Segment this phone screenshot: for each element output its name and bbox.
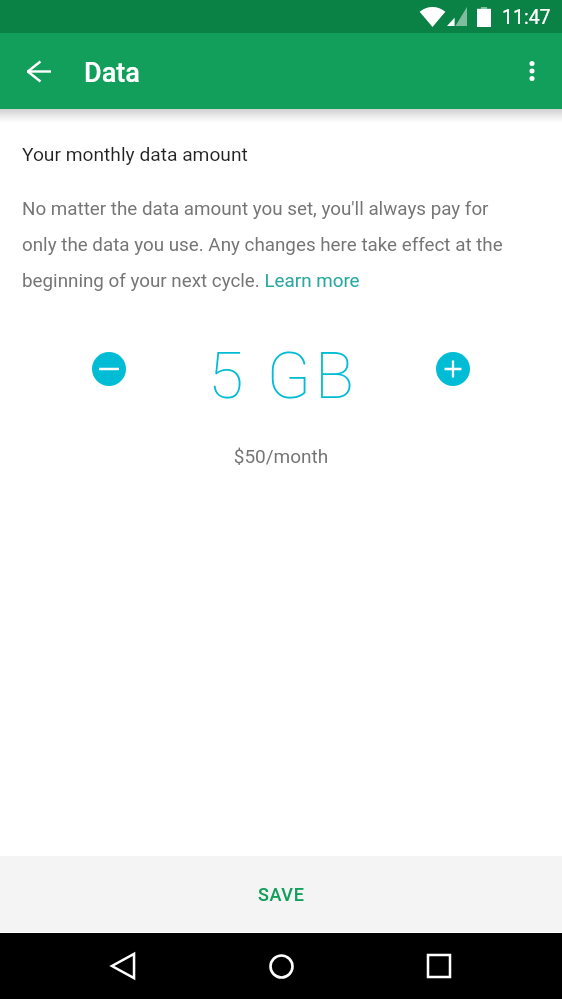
button[interactable]: Decrease data [92,352,126,386]
button[interactable]: SAVE [0,856,562,932]
staticText: 5 GB [208,338,358,414]
button[interactable]: Back [44,933,202,999]
button[interactable]: More options [508,47,556,95]
staticText: 11:47 [502,6,551,29]
staticText: Your monthly data amount [22,143,248,166]
staticText: SAVE [258,884,305,905]
button[interactable]: Recent apps [360,933,518,999]
staticText: Data [84,57,140,89]
button[interactable]: Navigate up [13,45,65,97]
staticText: $50/month [0,445,562,467]
button[interactable]: Home [202,933,360,999]
button[interactable]: Increase data [436,352,470,386]
staticText: No matter the data amount you set, you'l… [22,198,522,292]
